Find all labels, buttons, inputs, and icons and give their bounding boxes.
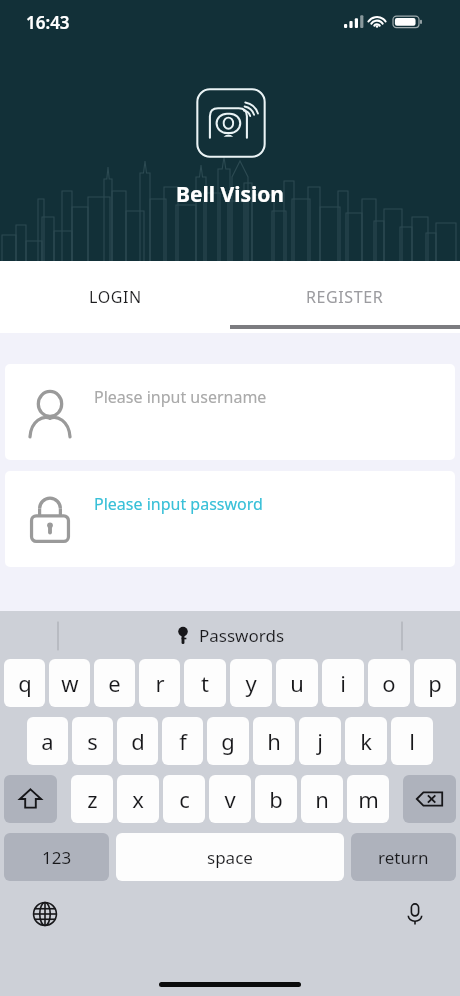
staticText: f bbox=[179, 726, 187, 756]
staticText: Bell Vision bbox=[176, 180, 285, 209]
button[interactable]: Change keyboard bbox=[26, 895, 64, 933]
button[interactable]: return bbox=[351, 833, 456, 881]
button[interactable]: p bbox=[414, 659, 456, 707]
staticText: Please input username bbox=[94, 386, 267, 408]
staticText: i bbox=[340, 668, 346, 698]
button[interactable]: LOGIN bbox=[0, 261, 230, 333]
staticText: k bbox=[360, 726, 372, 756]
staticText: z bbox=[87, 784, 98, 814]
button[interactable]: m bbox=[347, 775, 389, 823]
button[interactable]: i bbox=[322, 659, 364, 707]
staticText: v bbox=[224, 784, 236, 814]
button[interactable]: space bbox=[116, 833, 344, 881]
staticText: s bbox=[87, 726, 98, 756]
button[interactable]: Backspace bbox=[403, 775, 456, 823]
button[interactable]: c bbox=[163, 775, 205, 823]
button[interactable]: Passwords bbox=[175, 624, 285, 647]
staticText: REGISTER bbox=[306, 286, 384, 308]
button[interactable]: Please input password bbox=[5, 471, 455, 567]
button[interactable]: q bbox=[4, 659, 45, 707]
button[interactable]: j bbox=[299, 717, 341, 765]
button[interactable]: Please input username bbox=[5, 364, 455, 460]
staticText: return bbox=[378, 846, 429, 869]
button[interactable]: r bbox=[139, 659, 180, 707]
staticText: a bbox=[41, 726, 54, 756]
staticText: r bbox=[155, 668, 165, 698]
button[interactable]: Shift bbox=[4, 775, 57, 823]
staticText: u bbox=[290, 668, 304, 698]
button[interactable]: s bbox=[72, 717, 113, 765]
button[interactable]: z bbox=[71, 775, 113, 823]
staticText: d bbox=[131, 726, 145, 756]
staticText: p bbox=[428, 668, 442, 698]
staticText: n bbox=[315, 784, 329, 814]
button[interactable]: w bbox=[49, 659, 90, 707]
button[interactable]: o bbox=[368, 659, 410, 707]
button[interactable]: d bbox=[117, 717, 158, 765]
button[interactable]: u bbox=[276, 659, 318, 707]
staticText: 16:43 bbox=[26, 11, 70, 34]
staticText: x bbox=[132, 784, 144, 814]
staticText: o bbox=[382, 668, 396, 698]
staticText: j bbox=[317, 726, 323, 756]
staticText: q bbox=[18, 668, 32, 698]
staticText: w bbox=[61, 668, 79, 698]
staticText: y bbox=[245, 668, 257, 698]
button[interactable]: x bbox=[117, 775, 159, 823]
button[interactable]: 123 bbox=[4, 833, 109, 881]
staticText: LOGIN bbox=[89, 286, 142, 308]
button[interactable]: b bbox=[255, 775, 297, 823]
button[interactable]: y bbox=[230, 659, 272, 707]
staticText: t bbox=[201, 668, 209, 698]
staticText: g bbox=[221, 726, 235, 756]
staticText: Passwords bbox=[199, 624, 285, 647]
button[interactable]: e bbox=[94, 659, 135, 707]
button[interactable]: t bbox=[184, 659, 226, 707]
staticText: m bbox=[358, 784, 379, 814]
button[interactable]: n bbox=[301, 775, 343, 823]
staticText: Please input password bbox=[94, 493, 263, 515]
staticText: space bbox=[207, 846, 253, 869]
button[interactable]: f bbox=[162, 717, 203, 765]
staticText: c bbox=[179, 784, 190, 814]
button[interactable]: g bbox=[207, 717, 249, 765]
button[interactable]: a bbox=[27, 717, 68, 765]
staticText: b bbox=[269, 784, 283, 814]
button[interactable]: Dictation bbox=[396, 895, 434, 933]
button[interactable]: h bbox=[253, 717, 295, 765]
staticText: e bbox=[108, 668, 121, 698]
staticText: 123 bbox=[42, 846, 72, 869]
button[interactable]: k bbox=[345, 717, 387, 765]
staticText: h bbox=[267, 726, 281, 756]
button[interactable]: REGISTER bbox=[230, 261, 460, 333]
staticText: l bbox=[409, 726, 415, 756]
button[interactable]: l bbox=[391, 717, 433, 765]
button[interactable]: v bbox=[209, 775, 251, 823]
